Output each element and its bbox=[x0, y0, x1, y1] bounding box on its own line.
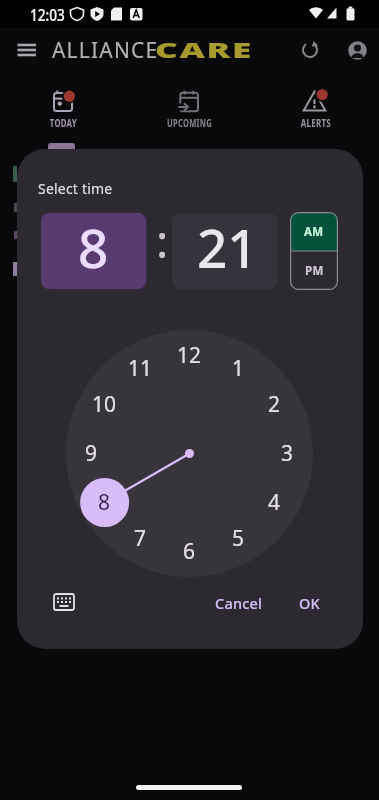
button[interactable]: AM bbox=[290, 212, 338, 251]
button[interactable]: 8 bbox=[41, 213, 146, 289]
staticText: 3 bbox=[281, 439, 294, 468]
staticText: 21 bbox=[197, 213, 258, 283]
button[interactable] bbox=[126, 80, 252, 136]
button[interactable]: OK bbox=[299, 593, 320, 613]
button[interactable] bbox=[54, 594, 74, 611]
staticText: : bbox=[156, 209, 169, 272]
staticText: 6 bbox=[183, 537, 196, 566]
staticText: 4 bbox=[268, 488, 281, 517]
button[interactable]: PM bbox=[290, 251, 338, 290]
staticText: 10 bbox=[92, 390, 117, 419]
staticText: 8 bbox=[98, 488, 111, 517]
staticText: ALLIANCE bbox=[52, 36, 159, 65]
staticText: 12 bbox=[177, 341, 202, 370]
staticText: 1 bbox=[232, 354, 245, 383]
staticText: ALERTS bbox=[301, 116, 331, 130]
button[interactable] bbox=[348, 41, 367, 60]
staticText: 11 bbox=[128, 354, 153, 383]
staticText: UPCOMING bbox=[167, 116, 212, 130]
staticText: PM bbox=[305, 263, 324, 279]
staticText: 8 bbox=[78, 213, 109, 283]
button[interactable] bbox=[17, 43, 37, 57]
button[interactable] bbox=[253, 80, 379, 136]
staticText: 12:03 bbox=[30, 3, 65, 26]
button[interactable] bbox=[302, 41, 318, 59]
staticText: 5 bbox=[232, 524, 245, 553]
staticText: Select time bbox=[38, 179, 113, 198]
staticText: 9 bbox=[85, 439, 98, 468]
button[interactable]: Cancel bbox=[215, 593, 263, 613]
staticText: AM bbox=[304, 224, 324, 240]
staticText: 7 bbox=[134, 524, 147, 553]
staticText: 2 bbox=[268, 390, 281, 419]
staticText: TODAY bbox=[50, 116, 77, 130]
button[interactable] bbox=[0, 80, 126, 136]
staticText: CARE bbox=[155, 36, 253, 65]
button[interactable]: 21 bbox=[172, 213, 277, 289]
